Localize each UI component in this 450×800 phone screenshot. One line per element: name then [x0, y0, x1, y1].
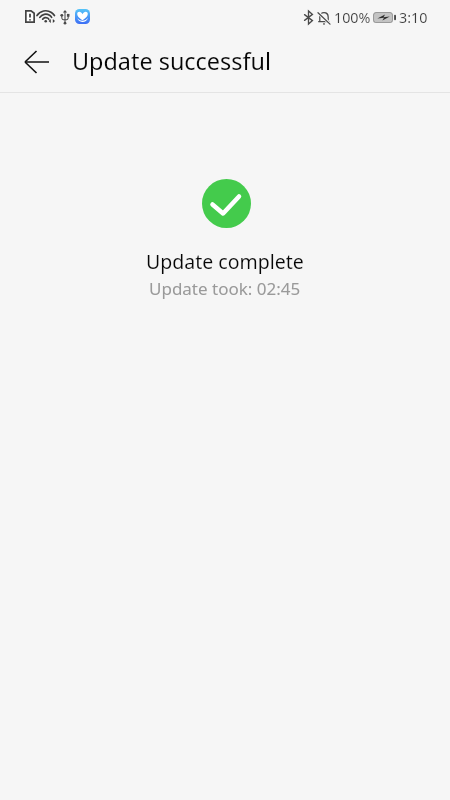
staticText: 3:10: [399, 8, 428, 27]
staticText: Update complete: [146, 248, 304, 275]
staticText: 100%: [334, 8, 371, 27]
staticText: Update took: 02:45: [149, 277, 301, 300]
staticText: Update successful: [72, 45, 271, 77]
button[interactable]: Back: [13, 38, 61, 86]
